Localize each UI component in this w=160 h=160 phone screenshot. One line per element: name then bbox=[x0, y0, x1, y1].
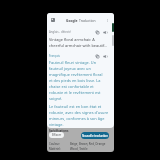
button[interactable]: Google bbox=[47, 16, 114, 24]
staticText: Nouvelle traduction bbox=[82, 134, 108, 138]
button[interactable]: More options bbox=[105, 18, 110, 23]
staticText: Wood, Textile bbox=[70, 147, 88, 151]
button[interactable]: Effacer bbox=[49, 132, 64, 138]
staticText: Effacer bbox=[52, 133, 62, 137]
staticText: Français bbox=[49, 54, 60, 58]
staticText: Anglais - détecté bbox=[49, 30, 71, 34]
staticText: Vintage floral armchair. A cheerful armc… bbox=[49, 37, 108, 48]
staticText: Beige, Brown, Red, Orange bbox=[70, 142, 106, 146]
staticText: Couleur: bbox=[49, 142, 61, 146]
staticText: Fauteuil fleuri vintage. Un fauteuil joy… bbox=[49, 60, 103, 101]
button[interactable]: Copy bbox=[95, 54, 100, 59]
staticText: Matériel: bbox=[49, 147, 61, 151]
staticText: Spécifications bbox=[49, 129, 69, 133]
staticText: Google bbox=[66, 18, 78, 22]
button[interactable]: Listen bbox=[103, 30, 108, 35]
staticText: Traduction bbox=[79, 18, 96, 22]
staticText: Le fauteuil est en bon état et robuste, … bbox=[49, 104, 109, 127]
button[interactable]: Nouvelle traduction bbox=[81, 132, 109, 139]
button[interactable]: Copy bbox=[95, 30, 100, 35]
button[interactable]: Listen bbox=[103, 54, 108, 59]
